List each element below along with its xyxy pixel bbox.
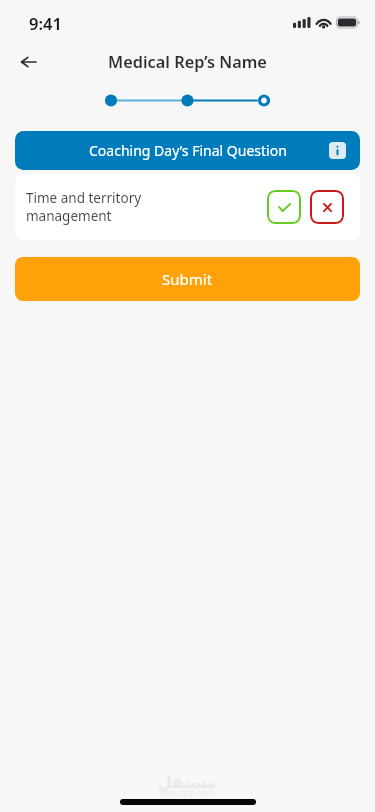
staticText: Coaching Day’s Final Question (89, 141, 287, 160)
button[interactable]: Reject (310, 190, 344, 224)
button[interactable]: Coaching Day’s Final Question (15, 131, 360, 170)
staticText: 9:41 (29, 12, 62, 34)
staticText: Time and territory management (26, 189, 267, 225)
staticText: مستقل (158, 773, 217, 792)
button[interactable]: Information (329, 142, 346, 159)
staticText: Submit (162, 269, 213, 289)
button[interactable]: Accept (267, 190, 301, 224)
button[interactable]: Submit (15, 257, 360, 301)
staticText: mostaql.com (160, 786, 215, 798)
staticText: Medical Rep’s Name (108, 51, 267, 73)
button[interactable]: Back (10, 44, 46, 80)
